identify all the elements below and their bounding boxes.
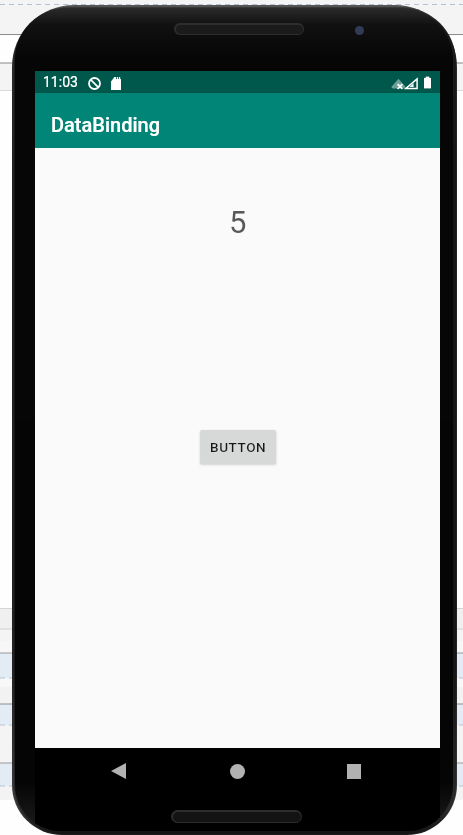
button[interactable]: Back <box>90 747 146 795</box>
staticText: DataBinding <box>51 113 160 136</box>
button[interactable]: BUTTON <box>200 430 276 464</box>
button[interactable]: Home <box>209 747 265 795</box>
button[interactable]: Recent apps <box>326 747 382 795</box>
button[interactable]: DataBinding <box>35 93 440 148</box>
staticText: 11:03 <box>43 74 78 90</box>
staticText: 5 <box>229 204 247 240</box>
staticText: BUTTON <box>210 439 267 455</box>
